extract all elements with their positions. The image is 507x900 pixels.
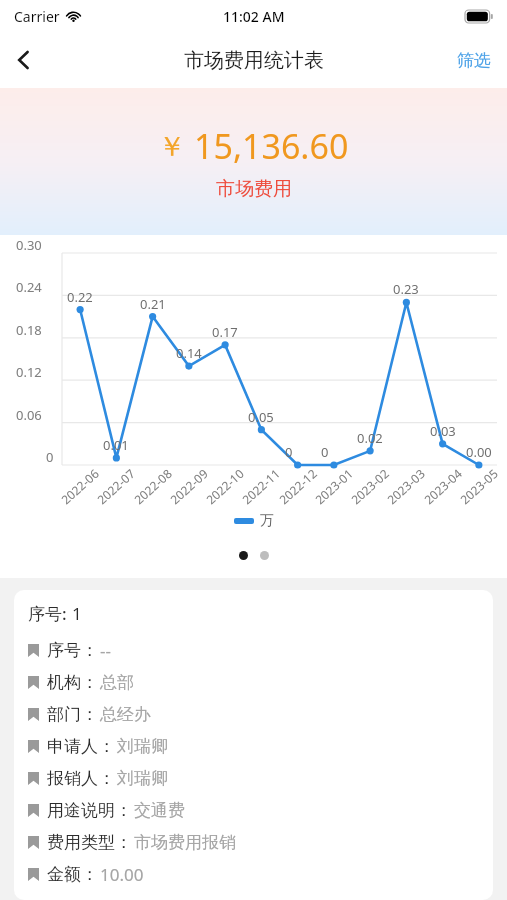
staticText: 序号:: [28, 602, 72, 625]
staticText: 2022-08: [131, 465, 175, 507]
staticText: 刘瑞卿: [117, 768, 168, 789]
button[interactable]: [260, 551, 269, 560]
staticText: 部门：: [47, 704, 98, 725]
staticText: 10.00: [100, 863, 144, 886]
staticText: 报销人：: [47, 768, 115, 789]
staticText: 0: [321, 443, 329, 461]
staticText: 0: [46, 448, 54, 466]
staticText: 11:02 AM: [223, 7, 285, 26]
staticText: 金额：: [47, 864, 98, 885]
button[interactable]: 筛选: [451, 44, 497, 77]
staticText: 0.02: [357, 429, 383, 447]
staticText: 0.22: [67, 288, 93, 306]
staticText: 费用类型：: [47, 832, 132, 853]
staticText: 序号：: [47, 640, 98, 661]
staticText: 总经办: [100, 704, 151, 725]
staticText: 2022-06: [58, 465, 102, 507]
staticText: 2022-12: [276, 465, 320, 507]
staticText: 2022-10: [203, 465, 247, 507]
staticText: 万: [260, 512, 274, 530]
staticText: Carrier: [14, 7, 60, 26]
staticText: 市场费用统计表: [184, 48, 324, 73]
staticText: 0.23: [393, 280, 419, 298]
staticText: 0.18: [16, 321, 42, 339]
staticText: 0.21: [140, 295, 166, 313]
staticText: 0.14: [176, 344, 202, 362]
staticText: 交通费: [134, 800, 185, 821]
staticText: 0.03: [430, 422, 456, 440]
staticText: 用途说明：: [47, 800, 132, 821]
button[interactable]: 序号:: [14, 590, 493, 900]
staticText: 2022-09: [167, 465, 211, 507]
staticText: 0.30: [16, 236, 42, 254]
staticText: 2023-03: [384, 465, 428, 507]
staticText: 0.12: [16, 363, 42, 381]
staticText: 2022-07: [94, 465, 138, 507]
staticText: 2023-04: [421, 465, 465, 507]
staticText: 15,136.60: [194, 123, 349, 169]
staticText: ￥: [158, 129, 186, 164]
staticText: 0.05: [248, 408, 274, 426]
staticText: 2023-02: [348, 465, 392, 507]
staticText: 2022-11: [239, 465, 283, 507]
staticText: --: [100, 639, 111, 662]
button[interactable]: Back: [0, 36, 48, 84]
staticText: 申请人：: [47, 736, 115, 757]
staticText: 0.00: [466, 443, 492, 461]
staticText: 2023-05: [457, 465, 501, 507]
staticText: 机构：: [47, 672, 98, 693]
staticText: 市场费用: [216, 177, 292, 201]
staticText: 0: [285, 443, 293, 461]
staticText: 0.01: [103, 436, 129, 454]
staticText: 0.06: [16, 406, 42, 424]
staticText: 筛选: [457, 50, 491, 71]
button[interactable]: [239, 551, 248, 560]
staticText: 2023-01: [312, 465, 356, 507]
staticText: 市场费用报销: [134, 832, 236, 853]
staticText: 0.17: [212, 323, 238, 341]
staticText: 总部: [100, 672, 134, 693]
staticText: 0.24: [16, 278, 42, 296]
staticText: 刘瑞卿: [117, 736, 168, 757]
staticText: 1: [72, 602, 82, 625]
